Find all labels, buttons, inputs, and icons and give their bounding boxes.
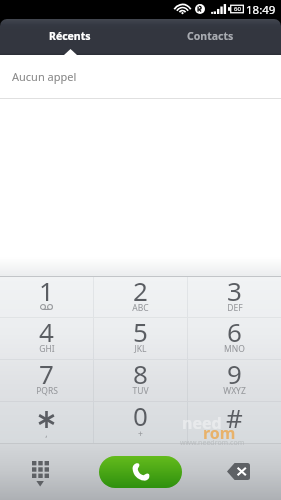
staticText: GHI xyxy=(39,343,55,355)
staticText: MNO xyxy=(224,343,245,355)
staticText: 9 xyxy=(227,356,242,391)
staticText: need xyxy=(182,412,222,434)
button[interactable]: 4 xyxy=(0,318,93,359)
button[interactable]: Contacts xyxy=(140,19,281,55)
staticText: JKL xyxy=(134,343,147,355)
staticText: 6 xyxy=(227,314,242,349)
staticText: 2 xyxy=(133,273,148,308)
staticText: Aucun appel xyxy=(12,69,77,84)
button[interactable]: Show dialpad xyxy=(0,443,81,500)
staticText: , xyxy=(45,428,48,440)
staticText: 5 xyxy=(133,314,148,349)
staticText: Récents xyxy=(49,29,91,43)
staticText: www.needrom.com xyxy=(180,438,245,448)
button[interactable]: 6 xyxy=(188,318,281,359)
staticText: PQRS xyxy=(36,385,58,397)
staticText: + xyxy=(138,428,143,440)
staticText: 3 xyxy=(227,273,242,308)
button[interactable]: # xyxy=(188,402,281,443)
staticText: 60 xyxy=(234,5,241,13)
staticText: 8 xyxy=(133,356,148,391)
button[interactable]: 2 xyxy=(94,277,187,317)
button[interactable]: 3 xyxy=(188,277,281,317)
staticText: ABC xyxy=(132,302,149,314)
button[interactable]: 8 xyxy=(94,360,187,401)
button[interactable]: Aucun appel xyxy=(0,55,281,98)
staticText: 18:49 xyxy=(246,2,276,16)
button[interactable]: Récents xyxy=(0,19,140,55)
button[interactable]: 5 xyxy=(94,318,187,359)
staticText: # xyxy=(226,400,243,435)
button[interactable]: Call xyxy=(99,456,182,488)
button[interactable]: 9 xyxy=(188,360,281,401)
staticText: Contacts xyxy=(187,29,234,43)
button[interactable]: 7 xyxy=(0,360,93,401)
button[interactable]: 0 xyxy=(94,402,187,443)
staticText: 1 xyxy=(39,273,54,308)
button[interactable]: 1 xyxy=(0,277,93,317)
button[interactable]: Backspace xyxy=(182,443,281,500)
staticText: rom xyxy=(203,422,236,444)
button[interactable]: , xyxy=(0,402,93,443)
staticText: DEF xyxy=(227,302,243,314)
staticText: TUV xyxy=(132,385,149,397)
staticText: 0 xyxy=(133,398,148,433)
staticText: 4 xyxy=(39,314,54,349)
staticText: 7 xyxy=(39,356,54,391)
staticText: WXYZ xyxy=(223,385,246,397)
